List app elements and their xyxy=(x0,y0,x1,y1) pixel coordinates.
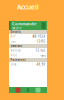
staticText: Ville xyxy=(10,54,17,57)
staticText: Commande xyxy=(12,21,36,26)
staticText: Accueil xyxy=(17,3,39,11)
staticText: AB-1024 xyxy=(32,35,45,38)
staticText: Details xyxy=(10,30,20,34)
staticText: Adresse xyxy=(10,49,21,52)
staticText: Date xyxy=(10,40,16,43)
staticText: 48,90 xyxy=(36,63,45,66)
staticText: Ref xyxy=(10,35,15,38)
staticText: Paris xyxy=(39,54,45,57)
staticText: Livraison xyxy=(10,44,22,48)
staticText: validee xyxy=(12,26,22,30)
staticText: 12/05 xyxy=(36,40,45,43)
staticText: Total xyxy=(10,63,16,66)
staticText: Paiement xyxy=(10,58,25,62)
staticText: 12 rue xyxy=(35,49,45,52)
